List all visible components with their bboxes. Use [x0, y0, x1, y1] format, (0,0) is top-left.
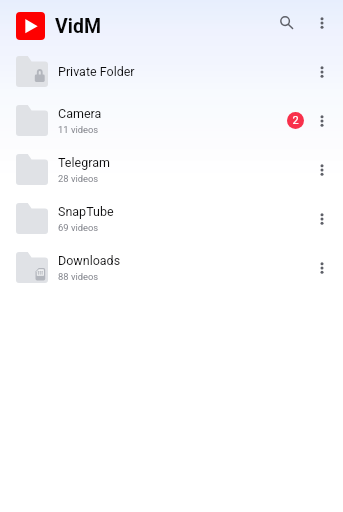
button[interactable]: More options: [304, 3, 339, 43]
button[interactable]: More options: [304, 194, 339, 243]
staticText: 11 videos: [58, 124, 99, 135]
button[interactable]: Camera: [0, 96, 343, 145]
button[interactable]: More options: [304, 96, 339, 145]
button[interactable]: Downloads: [0, 243, 343, 292]
staticText: Camera: [58, 106, 102, 121]
staticText: 28 videos: [58, 173, 99, 184]
staticText: VidM: [55, 15, 101, 38]
staticText: 2: [292, 114, 299, 127]
button[interactable]: More options: [304, 243, 339, 292]
staticText: 88 videos: [58, 271, 99, 282]
staticText: Telegram: [58, 155, 110, 170]
button[interactable]: More options: [304, 145, 339, 194]
staticText: 69 videos: [58, 222, 99, 233]
button[interactable]: Search: [269, 3, 304, 43]
button[interactable]: Private Folder: [0, 47, 343, 96]
staticText: Private Folder: [58, 64, 135, 79]
button[interactable]: Telegram: [0, 145, 343, 194]
button[interactable]: More options: [304, 47, 339, 96]
staticText: Downloads: [58, 253, 121, 268]
button[interactable]: SnapTube: [0, 194, 343, 243]
staticText: SnapTube: [58, 204, 114, 219]
